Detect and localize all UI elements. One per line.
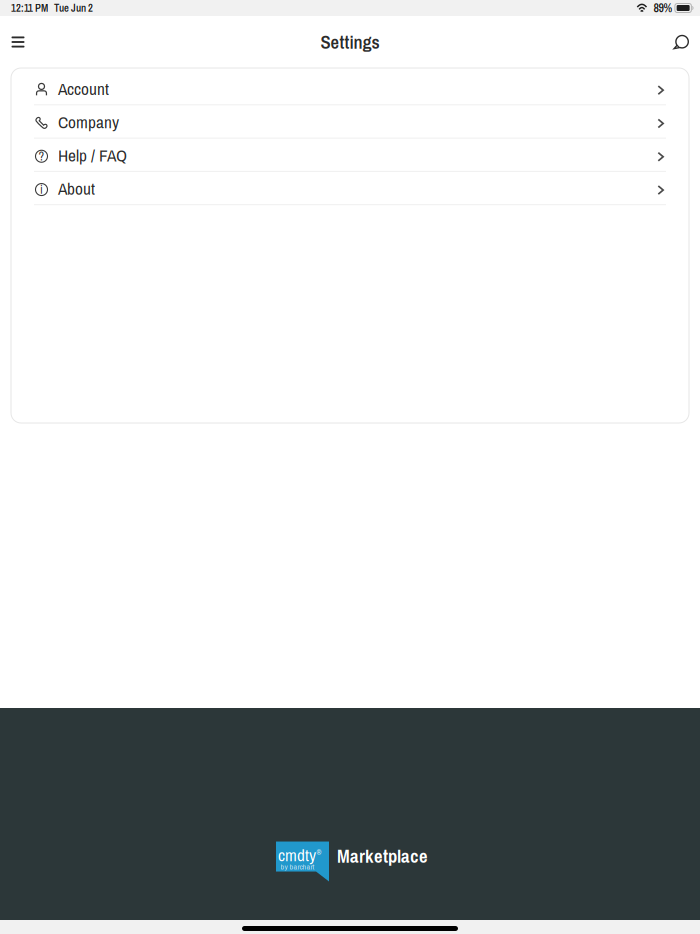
staticText: Marketplace [337,843,428,868]
staticText: Tue Jun 2 [48,1,93,15]
staticText: 12:11 PM [11,1,48,15]
staticText: ® [316,847,321,857]
staticText: Settings [320,29,379,54]
staticText: Company [58,110,119,134]
staticText: Help / FAQ [58,144,127,167]
staticText: About [58,177,95,200]
button[interactable]: Messages [663,20,699,64]
button[interactable]: Company [11,105,689,139]
button[interactable]: ? [11,139,689,172]
staticText: 89% [647,0,672,16]
button[interactable]: Menu [0,20,36,64]
staticText: cmdty [278,843,316,867]
button[interactable]: Account [11,72,689,105]
staticText: Account [58,77,109,100]
staticText: ? [38,148,44,164]
staticText: by barchart [280,861,314,872]
staticText: i [40,181,43,198]
button[interactable]: i [11,172,689,205]
